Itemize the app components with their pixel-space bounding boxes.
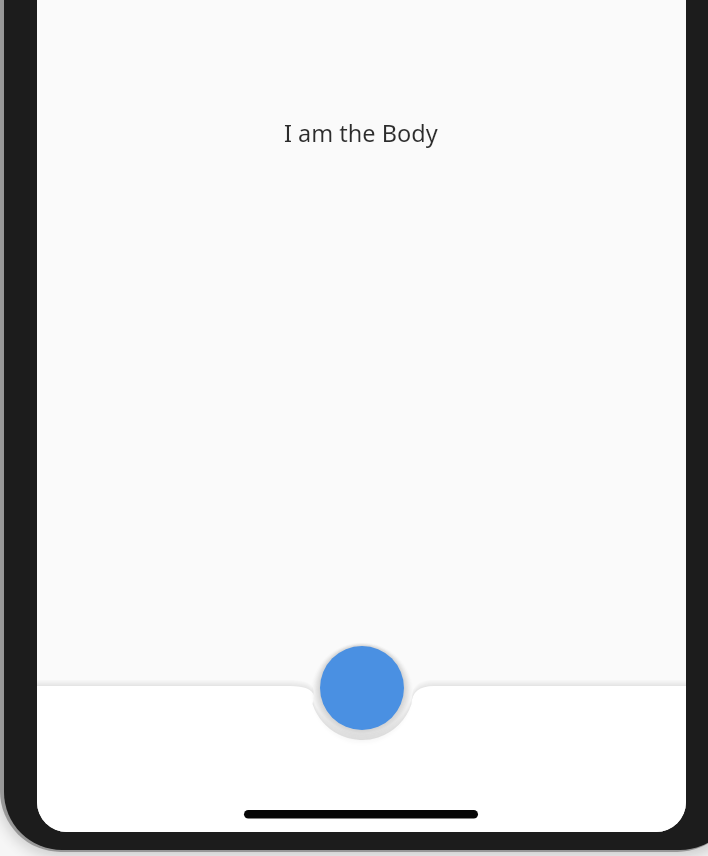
button[interactable]: Add bbox=[320, 646, 404, 730]
